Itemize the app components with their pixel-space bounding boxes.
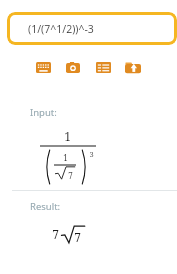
staticText: 7 — [52, 226, 59, 242]
button[interactable]: (1/(7^1/2))^-3 — [7, 12, 177, 45]
button[interactable]: Camera — [64, 58, 82, 76]
button[interactable]: Upload file — [124, 58, 142, 76]
staticText: 1 — [63, 152, 68, 163]
staticText: 3 — [89, 149, 94, 159]
staticText: Result: — [30, 200, 61, 213]
staticText: 1 — [64, 128, 71, 144]
staticText: Input: — [30, 106, 57, 119]
staticText: (1/(7^1/2))^-3 — [28, 22, 94, 36]
staticText: 7 — [74, 229, 81, 245]
staticText: 7 — [68, 170, 73, 181]
button[interactable]: Examples — [94, 58, 112, 76]
button[interactable]: Keyboard — [34, 58, 52, 76]
